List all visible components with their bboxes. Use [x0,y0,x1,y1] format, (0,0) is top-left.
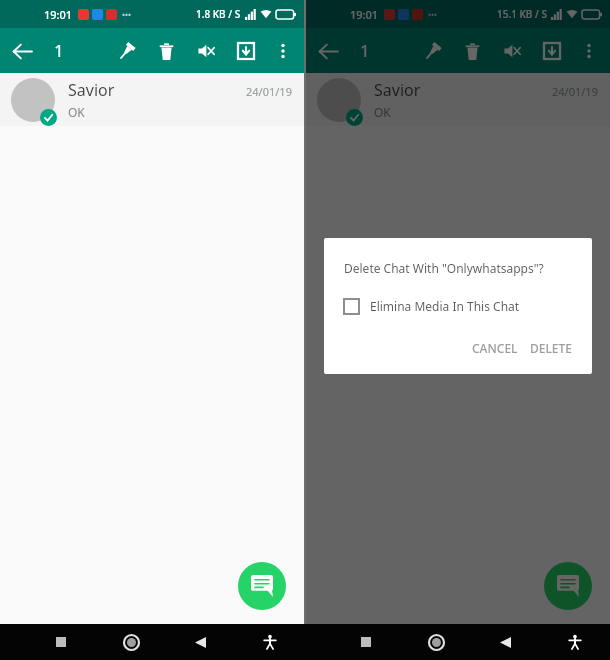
staticText: 19:01 [44,7,73,22]
button[interactable]: Delete [146,31,186,71]
button[interactable]: New chat [238,562,286,610]
button[interactable]: Archive [226,31,266,71]
button[interactable]: Home [118,629,144,655]
button[interactable]: Pin [412,31,452,71]
staticText: 19:01 [350,7,379,22]
button[interactable]: Accessibility [257,629,283,655]
button[interactable]: Savior [0,73,304,126]
button[interactable]: Back [0,29,44,73]
staticText: 1 [360,39,370,62]
button[interactable]: Back [187,629,213,655]
staticText: Delete Chat With "Onlywhatsapps"? [344,260,544,276]
staticText: 1.8 KB / S [196,7,241,21]
button[interactable]: Home [423,629,449,655]
staticText: Elimina Media In This Chat [370,298,520,314]
button[interactable]: Mute [186,31,226,71]
button[interactable]: CANCEL [468,336,522,360]
button[interactable]: Mute [492,31,532,71]
staticText: 1 [54,39,64,62]
button[interactable]: DELETE [526,336,576,360]
staticText: 24/01/19 [552,84,598,99]
staticText: 24/01/19 [246,84,292,99]
button[interactable]: More options [266,34,300,68]
staticText: 15.1 KB / S [497,7,547,21]
button[interactable]: More options [572,34,606,68]
button[interactable]: Delete [452,31,492,71]
button[interactable]: Back [306,29,350,73]
button[interactable]: Recents [48,629,74,655]
staticText: DELETE [530,340,572,356]
staticText: ••• [428,9,438,20]
button[interactable]: Archive [532,31,572,71]
button[interactable]: Recents [353,629,379,655]
button[interactable]: Elimina Media In This Chat [344,298,520,314]
staticText: Savior [68,79,115,101]
staticText: OK [374,104,391,120]
button[interactable]: New chat [544,562,592,610]
button[interactable]: Pin [106,31,146,71]
staticText: CANCEL [472,340,518,356]
staticText: Savior [374,79,421,101]
button[interactable]: Back [492,629,518,655]
staticText: ••• [122,9,132,20]
button[interactable]: Accessibility [562,629,588,655]
button[interactable]: Savior [306,73,610,126]
staticText: OK [68,104,85,120]
